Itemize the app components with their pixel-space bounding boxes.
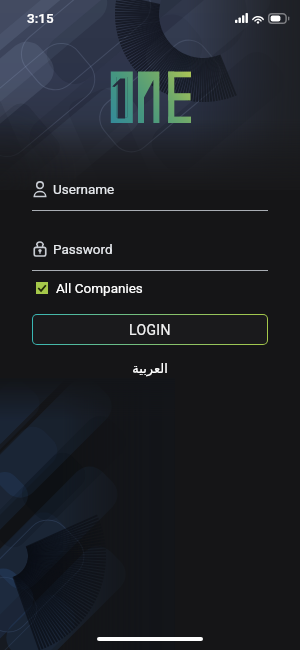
button[interactable]: All Companies: [36, 278, 143, 298]
staticText: All Companies: [56, 280, 143, 296]
staticText: LOGIN: [129, 322, 171, 338]
staticText: Username: [53, 181, 115, 197]
button[interactable]: LOGIN: [33, 315, 267, 344]
button[interactable]: Password: [0, 241, 300, 271]
button[interactable]: Username: [0, 181, 300, 211]
staticText: Password: [53, 241, 113, 257]
button[interactable]: العربية: [0, 361, 300, 376]
staticText: 3:15: [27, 10, 54, 26]
